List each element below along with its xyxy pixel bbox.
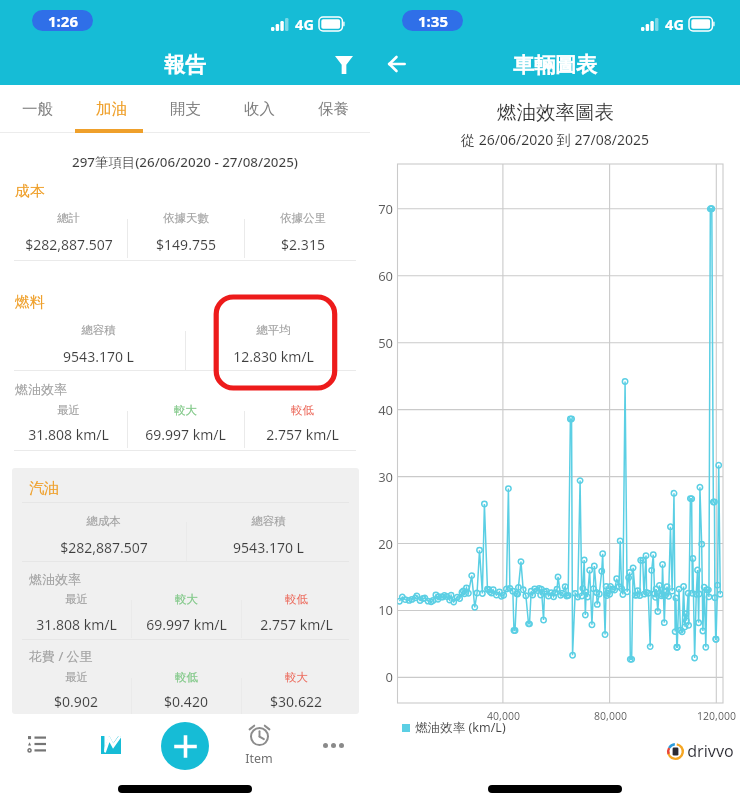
staticText: 成本 xyxy=(15,182,45,201)
staticText: $2.315 xyxy=(281,235,325,254)
staticText: 收入 xyxy=(244,99,275,119)
button[interactable]: Back xyxy=(379,47,413,81)
staticText: 80,000 xyxy=(594,709,627,723)
staticText: 車輛圖表 xyxy=(513,52,597,78)
staticText: 9543.170 L xyxy=(233,538,304,557)
button[interactable]: Records list xyxy=(5,720,69,768)
staticText: 開支 xyxy=(170,99,201,119)
button[interactable]: Add record xyxy=(161,722,209,770)
staticText: $282,887.507 xyxy=(60,538,148,557)
staticText: 依據天數 xyxy=(163,211,209,225)
staticText: 20 xyxy=(378,535,393,553)
staticText: 40 xyxy=(378,401,393,419)
staticText: 69.997 km/L xyxy=(145,425,226,444)
staticText: 燃油效率 xyxy=(15,381,67,397)
staticText: 報告 xyxy=(164,52,206,78)
staticText: $0.902 xyxy=(54,692,98,711)
button[interactable]: Filter xyxy=(327,48,361,82)
staticText: $30.622 xyxy=(270,692,322,711)
button[interactable]: 開支 xyxy=(148,85,222,133)
staticText: 較低 xyxy=(291,403,314,417)
staticText: 總平均 xyxy=(256,323,291,337)
staticText: 31.808 km/L xyxy=(28,425,109,444)
staticText: drivvo xyxy=(687,740,734,762)
staticText: 一般 xyxy=(22,99,53,119)
staticText: 30 xyxy=(378,468,393,486)
staticText: 燃油效率 (km/L) xyxy=(415,719,506,736)
staticText: 總容積 xyxy=(81,323,116,337)
staticText: 總容積 xyxy=(251,514,286,528)
staticText: 從 26/06/2020 到 27/08/2025 xyxy=(461,130,649,149)
staticText: 較大 xyxy=(175,592,198,606)
button[interactable]: 保養 xyxy=(296,85,370,133)
staticText: $282,887.507 xyxy=(25,235,113,254)
staticText: 4G xyxy=(665,14,684,34)
staticText: 花費 / 公里 xyxy=(29,647,93,665)
staticText: 69.997 km/L xyxy=(146,615,227,634)
button[interactable]: 加油 xyxy=(74,85,148,133)
staticText: 9543.170 L xyxy=(63,347,134,366)
staticText: 較低 xyxy=(285,592,308,606)
staticText: Item xyxy=(245,750,273,767)
staticText: 10 xyxy=(378,601,393,619)
staticText: 燃油效率 xyxy=(29,571,81,587)
staticText: 40,000 xyxy=(487,709,520,723)
staticText: 汽油 xyxy=(29,479,59,498)
button[interactable]: 一般 xyxy=(0,85,74,133)
button[interactable]: More options xyxy=(301,721,365,769)
staticText: $149.755 xyxy=(156,235,216,254)
staticText: 0 xyxy=(385,668,393,686)
staticText: 加油 xyxy=(96,99,127,119)
staticText: 較大 xyxy=(174,403,197,417)
staticText: 較大 xyxy=(285,670,308,684)
staticText: 保養 xyxy=(318,99,349,119)
staticText: 297筆項目(26/06/2020 - 27/08/2025) xyxy=(72,153,298,171)
staticText: 燃油效率圖表 xyxy=(497,100,614,125)
staticText: 較低 xyxy=(175,670,198,684)
button[interactable]: Charts xyxy=(79,721,143,769)
staticText: 總計 xyxy=(57,211,80,225)
staticText: 1:35 xyxy=(418,11,448,31)
button[interactable]: 收入 xyxy=(222,85,296,133)
staticText: 最近 xyxy=(65,670,88,684)
staticText: 50 xyxy=(378,334,393,352)
staticText: 2.757 km/L xyxy=(260,615,333,634)
button[interactable]: Item xyxy=(229,725,289,777)
staticText: 1:26 xyxy=(48,11,78,31)
staticText: 70 xyxy=(378,200,393,218)
staticText: 31.808 km/L xyxy=(36,615,117,634)
staticText: 2.757 km/L xyxy=(266,425,339,444)
staticText: 12.830 km/L xyxy=(233,347,314,366)
staticText: 60 xyxy=(378,267,393,285)
staticText: 120,000 xyxy=(697,709,736,723)
staticText: 最近 xyxy=(65,592,88,606)
staticText: 總成本 xyxy=(86,514,121,528)
staticText: $0.420 xyxy=(164,692,208,711)
staticText: 燃料 xyxy=(15,293,45,312)
staticText: 最近 xyxy=(57,403,80,417)
staticText: 依據公里 xyxy=(280,211,326,225)
staticText: 4G xyxy=(295,14,314,34)
